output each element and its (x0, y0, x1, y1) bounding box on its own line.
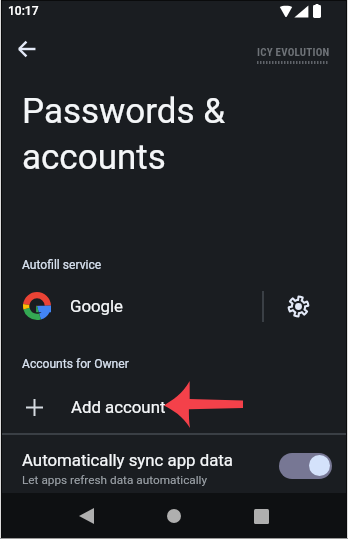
button[interactable]: Autofill settings (278, 282, 319, 330)
button[interactable]: Google (0, 282, 348, 330)
button[interactable]: Home (146, 493, 202, 539)
staticText: 10:17 (8, 4, 39, 18)
staticText: ICY EVOLUTION (257, 46, 330, 59)
staticText: Accounts for Owner (22, 357, 129, 371)
button[interactable]: Back (58, 493, 114, 539)
button[interactable]: Automatically sync app data (279, 453, 332, 479)
staticText: Let apps refresh data automatically (22, 473, 208, 487)
staticText: Google (70, 296, 124, 316)
button[interactable]: Automatically sync app data (0, 438, 348, 499)
staticText: Automatically sync app data (22, 450, 233, 470)
button[interactable]: Navigate up (14, 36, 40, 62)
staticText: Passwords & accounts (22, 91, 226, 178)
staticText: Add account (71, 397, 166, 417)
button[interactable]: Add account (0, 383, 348, 431)
button[interactable]: Recent apps (233, 493, 289, 539)
staticText: Autofill service (22, 258, 102, 272)
